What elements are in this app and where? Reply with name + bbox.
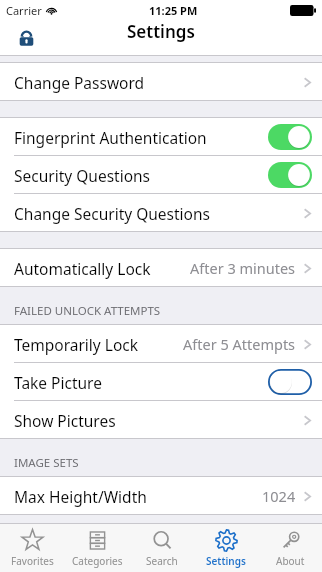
staticText: Change Password <box>14 72 145 93</box>
button[interactable]: Change Password <box>0 63 322 101</box>
staticText: IMAGE SETS <box>14 455 79 471</box>
button[interactable]: Max Height/Width <box>0 477 322 515</box>
button[interactable]: About <box>258 524 322 572</box>
staticText: After 3 minutes <box>190 258 296 278</box>
button[interactable]: Favorites <box>0 524 65 572</box>
button[interactable]: Settings <box>194 524 258 572</box>
button[interactable]: Off <box>268 369 312 395</box>
button[interactable]: Take Picture <box>0 363 322 401</box>
staticText: Search <box>146 554 178 568</box>
staticText: Carrier <box>6 3 42 18</box>
button[interactable]: Search <box>130 524 194 572</box>
button[interactable]: Temporarily Lock <box>0 325 322 363</box>
button[interactable]: Automatically Lock <box>0 249 322 287</box>
button[interactable]: Show Pictures <box>0 401 322 439</box>
staticText: Settings <box>206 554 246 568</box>
staticText: After 5 Attempts <box>183 334 296 354</box>
button[interactable]: On <box>268 124 312 150</box>
staticText: Settings <box>127 20 195 43</box>
button[interactable]: On <box>268 162 312 188</box>
button[interactable]: Fingerprint Authentication <box>0 118 322 156</box>
staticText: Show Pictures <box>14 410 116 431</box>
staticText: About <box>276 554 305 568</box>
button[interactable]: Categories <box>65 524 130 572</box>
button[interactable]: Security Questions <box>0 156 322 194</box>
button[interactable]: Change Security Questions <box>0 194 322 232</box>
staticText: Favorites <box>11 554 54 568</box>
staticText: Categories <box>72 554 123 568</box>
staticText: Fingerprint Authentication <box>14 127 207 148</box>
staticText: Take Picture <box>14 372 102 393</box>
button[interactable]: Lock <box>13 25 39 51</box>
staticText: Security Questions <box>14 165 151 186</box>
staticText: Temporarily Lock <box>14 334 139 355</box>
staticText: Max Height/Width <box>14 486 147 507</box>
staticText: 1024 <box>262 486 296 506</box>
staticText: Automatically Lock <box>14 258 151 279</box>
staticText: FAILED UNLOCK ATTEMPTS <box>14 303 161 319</box>
staticText: 11:25 PM <box>149 3 198 18</box>
staticText: Change Security Questions <box>14 203 210 224</box>
